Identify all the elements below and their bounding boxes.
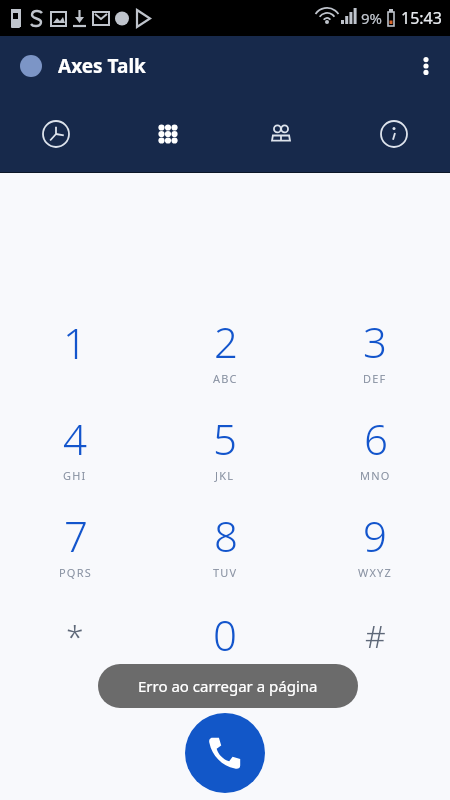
staticText: TUV [213, 565, 238, 580]
staticText: 6 [364, 410, 388, 467]
button[interactable]: # [300, 592, 450, 692]
button[interactable]: 7 [0, 495, 150, 592]
button[interactable]: Erro ao carregar a página [98, 664, 358, 708]
staticText: 9% [361, 8, 383, 28]
staticText: Erro ao carregar a página [138, 676, 318, 696]
staticText: Axes Talk [58, 53, 146, 79]
button[interactable]: * [0, 592, 150, 692]
button[interactable]: 4 [0, 398, 150, 495]
button[interactable]: 8 [150, 495, 300, 592]
button[interactable]: 6 [300, 398, 450, 495]
staticText: 0 [213, 606, 237, 663]
staticText: GHI [63, 468, 87, 483]
button[interactable]: 2 [150, 301, 300, 398]
staticText: 15:43 [401, 7, 442, 29]
button[interactable]: Contacts [224, 96, 337, 172]
staticText: MNO [360, 468, 391, 483]
button[interactable]: 9 [300, 495, 450, 592]
button[interactable]: 5 [150, 398, 300, 495]
staticText: ABC [213, 371, 238, 386]
staticText: DEF [363, 371, 387, 386]
staticText: * [66, 614, 84, 658]
staticText: PQRS [59, 565, 92, 580]
button[interactable]: Dialpad [112, 96, 224, 172]
staticText: + [222, 663, 229, 678]
button[interactable]: 3 [300, 301, 450, 398]
button[interactable]: 1 [0, 301, 150, 398]
staticText: 7 [64, 507, 88, 564]
staticText: WXYZ [358, 565, 392, 580]
button[interactable]: 0 [150, 592, 300, 692]
button[interactable]: More options [402, 42, 450, 90]
staticText: 9 [363, 507, 387, 564]
staticText: 2 [214, 313, 238, 370]
staticText: JKL [215, 468, 235, 483]
staticText: 4 [63, 410, 87, 467]
staticText: 1 [63, 314, 87, 371]
staticText: 8 [214, 507, 238, 564]
staticText: # [365, 614, 386, 658]
staticText: 3 [363, 313, 387, 370]
button[interactable]: Info [337, 96, 450, 172]
button[interactable]: Recent calls [0, 96, 112, 172]
staticText: 5 [213, 410, 237, 467]
button[interactable]: Call [185, 713, 265, 793]
